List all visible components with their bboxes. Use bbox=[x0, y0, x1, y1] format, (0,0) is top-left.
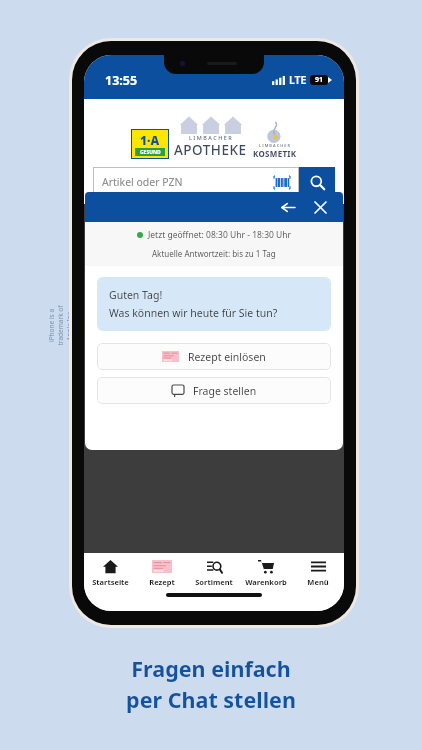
staticText: Rezept einlösen bbox=[188, 350, 266, 364]
staticText: 91 bbox=[315, 75, 324, 85]
staticText: GESUND bbox=[140, 149, 161, 156]
staticText: Guten Tag! bbox=[109, 288, 163, 302]
staticText: APOTHEKE bbox=[174, 141, 247, 159]
button[interactable]: Zurück bbox=[277, 196, 299, 218]
staticText: Artikel oder PZN bbox=[102, 175, 274, 189]
staticText: KOSMETIK bbox=[253, 148, 297, 159]
staticText: Rezept bbox=[149, 577, 175, 587]
staticText: Fragen einfach bbox=[131, 654, 291, 683]
staticText: Warenkorb bbox=[245, 577, 287, 587]
button[interactable]: Rezept einlösen bbox=[97, 343, 331, 370]
button[interactable]: Menü bbox=[292, 553, 344, 593]
staticText: 1·A bbox=[140, 132, 160, 148]
staticText: 13:55 bbox=[105, 72, 138, 89]
staticText: Was können wir heute für Sie tun? bbox=[109, 306, 278, 320]
button[interactable]: Sortiment bbox=[188, 553, 240, 593]
staticText: LTE bbox=[289, 73, 307, 87]
button[interactable]: Warenkorb bbox=[240, 553, 292, 593]
staticText: iPhone is a trademark of Apple Inc. bbox=[46, 302, 73, 348]
button[interactable]: Rezept bbox=[136, 553, 188, 593]
staticText: per Chat stellen bbox=[126, 685, 296, 714]
button[interactable]: Startseite bbox=[84, 553, 136, 593]
staticText: Aktuelle Antwortzeit: bis zu 1 Tag bbox=[152, 248, 276, 259]
button[interactable]: Suchen bbox=[299, 167, 335, 197]
staticText: Jetzt geöffnet: 08:30 Uhr - 18:30 Uhr bbox=[148, 229, 292, 241]
staticText: L I M B A C H E R bbox=[189, 134, 232, 141]
button[interactable]: Schließen bbox=[309, 196, 331, 218]
staticText: Startseite bbox=[92, 577, 129, 587]
button[interactable]: Frage stellen bbox=[97, 377, 331, 404]
staticText: Sortiment bbox=[195, 577, 233, 587]
staticText: L I M B A C H E R bbox=[259, 143, 291, 148]
staticText: Menü bbox=[307, 577, 329, 587]
staticText: Frage stellen bbox=[193, 384, 257, 398]
button[interactable]: Artikel oder PZN bbox=[93, 167, 299, 197]
